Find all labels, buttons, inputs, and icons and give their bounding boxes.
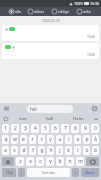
- staticText: 8: [74, 125, 77, 132]
- staticText: t: [41, 136, 43, 143]
- button[interactable]: 9: [81, 124, 89, 133]
- button[interactable]: ä: [92, 146, 99, 155]
- button[interactable]: s: [11, 146, 18, 155]
- button[interactable]: 10:35: [2, 43, 99, 59]
- staticText: ö: [85, 147, 89, 154]
- button[interactable]: n: [66, 157, 74, 166]
- button[interactable]: Backspace: [86, 157, 99, 166]
- staticText: 6: [54, 125, 57, 132]
- staticText: hol: [30, 106, 37, 112]
- button[interactable]: More suggestions: [92, 115, 99, 122]
- staticText: n: [68, 158, 72, 165]
- staticText: b: [58, 158, 62, 165]
- staticText: e: [22, 136, 25, 143]
- staticText: c: [39, 158, 42, 165]
- button[interactable]: alla: [8, 9, 22, 14]
- staticText: å: [94, 136, 97, 143]
- staticText: ?1☺: [6, 170, 13, 175]
- staticText: j: [59, 147, 61, 154]
- staticText: g: [40, 147, 44, 154]
- button[interactable]: p: [83, 135, 90, 144]
- button[interactable]: g: [38, 146, 45, 155]
- button[interactable]: 8: [71, 124, 79, 133]
- staticText: i: [68, 136, 70, 143]
- button[interactable]: i: [65, 135, 72, 144]
- button[interactable]: 6: [51, 124, 59, 133]
- staticText: ,: [21, 169, 23, 176]
- button[interactable]: q: [2, 135, 9, 144]
- staticText: a: [4, 147, 7, 154]
- button[interactable]: t: [38, 135, 45, 144]
- button[interactable]: f: [29, 146, 36, 155]
- button[interactable]: ,: [18, 168, 25, 177]
- button[interactable]: 0: [91, 124, 99, 133]
- button[interactable]: o: [74, 135, 81, 144]
- button[interactable]: d: [20, 146, 27, 155]
- staticText: h: [49, 147, 53, 154]
- button[interactable]: .: [72, 168, 79, 177]
- button[interactable]: Clear: [90, 104, 99, 113]
- button[interactable]: 2: [11, 124, 19, 133]
- button[interactable]: b: [56, 157, 64, 166]
- staticText: 2: [14, 125, 17, 132]
- staticText: m: [78, 158, 83, 165]
- button[interactable]: m: [76, 157, 84, 166]
- button[interactable]: z: [16, 157, 24, 166]
- button[interactable]: r: [29, 135, 36, 144]
- button[interactable]: Done: [81, 168, 99, 177]
- button[interactable]: höll: [36, 114, 64, 123]
- staticText: 9: [84, 125, 87, 132]
- staticText: p: [85, 136, 89, 143]
- staticText: Done: [85, 170, 95, 175]
- button[interactable]: viktiga: [51, 9, 71, 14]
- button[interactable]: e: [20, 135, 27, 144]
- button[interactable]: ö: [83, 146, 90, 155]
- button[interactable]: k: [65, 146, 72, 155]
- button[interactable]: v: [46, 157, 54, 166]
- staticText: alla: [15, 9, 21, 14]
- button[interactable]: l: [74, 146, 81, 155]
- button[interactable]: hon: [9, 114, 36, 123]
- button[interactable]: c: [36, 157, 44, 166]
- button[interactable]: y: [47, 135, 54, 144]
- staticText: z: [19, 158, 22, 165]
- staticText: 4: [34, 125, 37, 132]
- button[interactable]: h: [47, 146, 54, 155]
- button[interactable]: Holm: [64, 114, 92, 123]
- button[interactable]: 7: [61, 124, 69, 133]
- button[interactable]: arkiv: [76, 9, 93, 14]
- staticText: y: [49, 136, 52, 143]
- button[interactable]: ?1☺: [2, 168, 16, 177]
- button[interactable]: u: [56, 135, 63, 144]
- button[interactable]: 10:34: [2, 25, 99, 41]
- button[interactable]: w: [11, 135, 18, 144]
- staticText: x: [29, 158, 32, 165]
- staticText: v: [49, 158, 52, 165]
- staticText: s: [13, 147, 16, 154]
- staticText: k: [67, 147, 70, 154]
- button[interactable]: olästa: [27, 9, 46, 14]
- staticText: viktiga: [58, 9, 70, 14]
- staticText: 100%: [74, 1, 83, 6]
- staticText: 10:36: [90, 1, 99, 6]
- button[interactable]: Menu: [2, 104, 11, 113]
- staticText: q: [4, 136, 8, 143]
- staticText: o: [76, 136, 80, 143]
- button[interactable]: Svenska: [27, 168, 70, 177]
- staticText: f: [32, 147, 34, 154]
- button[interactable]: Shift: [2, 157, 14, 166]
- button[interactable]: 3: [21, 124, 29, 133]
- staticText: 10:35: [87, 53, 96, 57]
- button[interactable]: Emoji: [2, 115, 9, 122]
- staticText: u: [58, 136, 62, 143]
- button[interactable]: 5: [41, 124, 49, 133]
- button[interactable]: å: [92, 135, 99, 144]
- button[interactable]: x: [26, 157, 34, 166]
- button[interactable]: hol: [27, 105, 73, 113]
- button[interactable]: j: [56, 146, 63, 155]
- staticText: r: [31, 136, 34, 143]
- button[interactable]: a: [2, 146, 9, 155]
- button[interactable]: 1: [2, 124, 9, 133]
- button[interactable]: 4: [31, 124, 39, 133]
- staticText: ä: [94, 147, 97, 154]
